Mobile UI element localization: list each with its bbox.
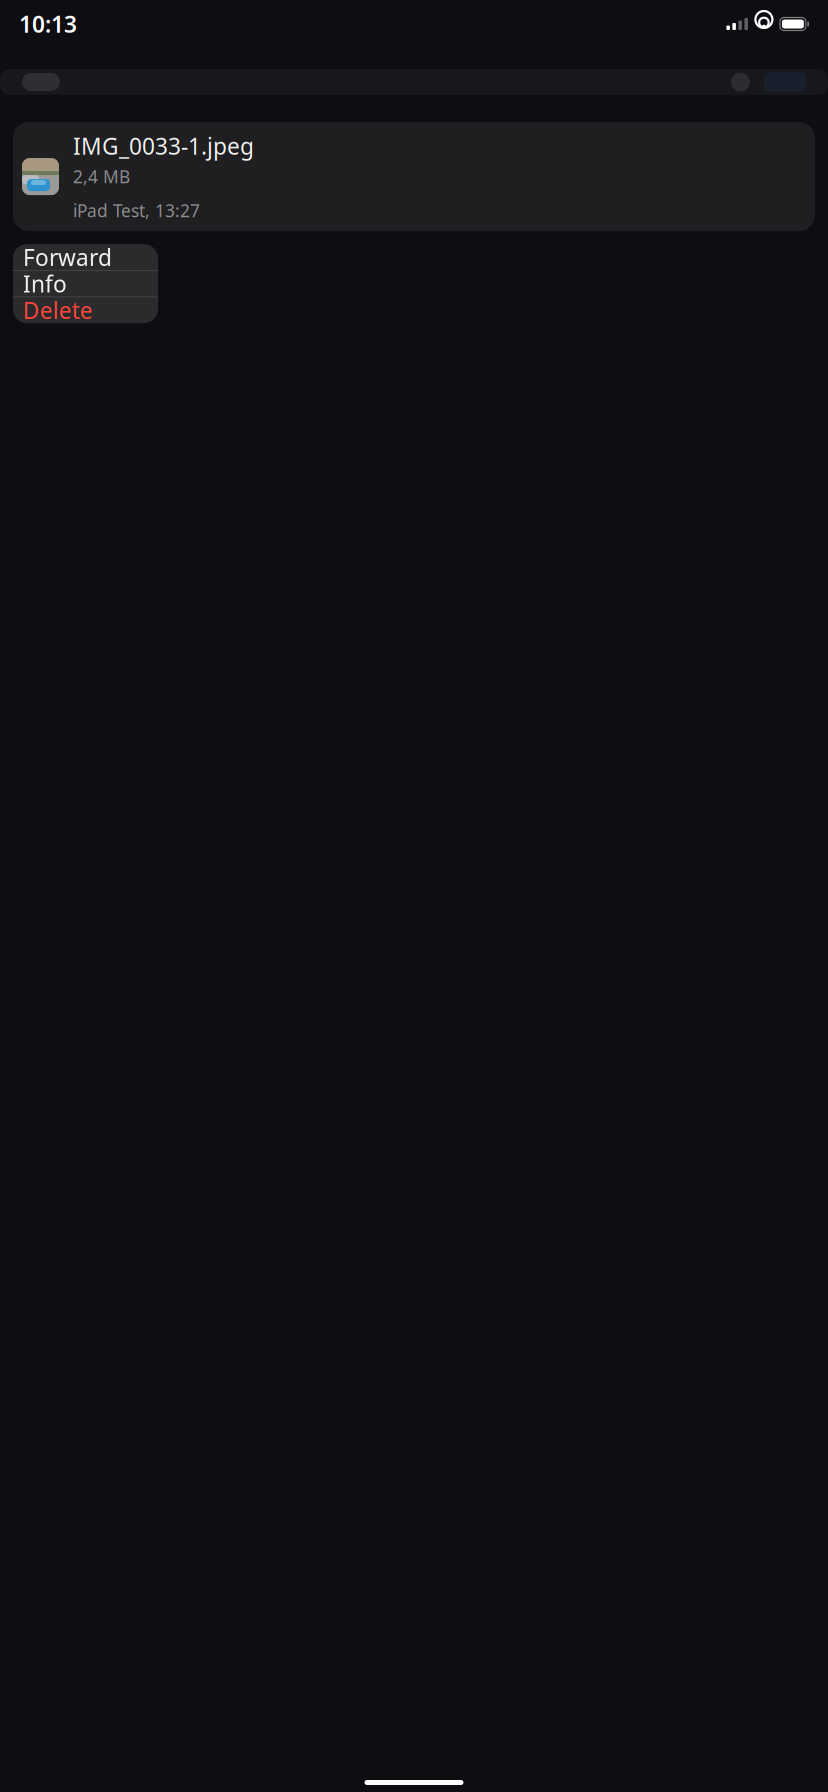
button[interactable]: Forward: [13, 244, 158, 270]
staticText: Forward: [23, 242, 112, 272]
button[interactable]: Delete: [13, 297, 158, 323]
staticText: Delete: [23, 295, 93, 325]
staticText: 2,4 MB: [73, 165, 130, 188]
button[interactable]: IMG_0033-1.jpeg: [13, 122, 815, 231]
staticText: Info: [23, 269, 67, 299]
staticText: IMG_0033-1.jpeg: [73, 131, 254, 161]
staticText: iPad Test, 13:27: [73, 199, 200, 222]
staticText: 10:13: [19, 9, 77, 39]
button[interactable]: Info: [13, 271, 158, 297]
